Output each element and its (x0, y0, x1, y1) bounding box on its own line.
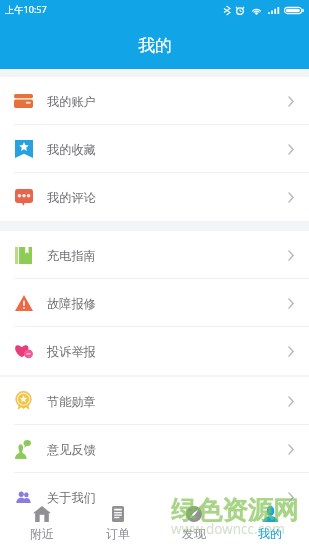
other: Orders (112, 506, 124, 522)
staticText: 我的评论 (47, 190, 96, 205)
button[interactable]: Discover (156, 504, 232, 550)
other: Discover (186, 506, 202, 522)
button[interactable]: 充电指南 (0, 231, 309, 279)
button[interactable]: 投诉举报 (0, 327, 309, 375)
button[interactable]: 关于我们 (0, 473, 309, 521)
button[interactable]: 我的收藏 (0, 125, 309, 173)
staticText: 订单 (106, 526, 130, 541)
button[interactable]: 我的账户 (0, 77, 309, 125)
button[interactable]: Nearby (4, 504, 80, 550)
staticText: 节能勋章 (47, 394, 96, 409)
button[interactable]: Profile (232, 504, 308, 550)
button[interactable]: Orders (80, 504, 156, 550)
staticText: 我的 (258, 526, 282, 541)
staticText: 发现 (182, 526, 206, 541)
staticText: 我的账户 (47, 94, 96, 109)
button[interactable]: 我的评论 (0, 173, 309, 221)
other: Profile (263, 506, 278, 522)
staticText: 上午10:57 (5, 3, 47, 16)
staticText: 故障报修 (47, 296, 96, 311)
staticText: 关于我们 (47, 490, 96, 505)
button[interactable]: 故障报修 (0, 279, 309, 327)
staticText: 附近 (30, 526, 54, 541)
button[interactable]: 节能勋章 (0, 377, 309, 425)
button[interactable]: 意见反馈 (0, 425, 309, 473)
staticText: 充电指南 (47, 248, 96, 263)
staticText: 我的 (138, 35, 172, 56)
staticText: 绿色资源网 (171, 494, 299, 526)
staticText: 我的收藏 (47, 142, 96, 157)
other: Nearby (33, 506, 51, 522)
staticText: 意见反馈 (47, 442, 96, 457)
staticText: 投诉举报 (47, 344, 96, 359)
staticText: www.downcc.com (171, 520, 285, 538)
